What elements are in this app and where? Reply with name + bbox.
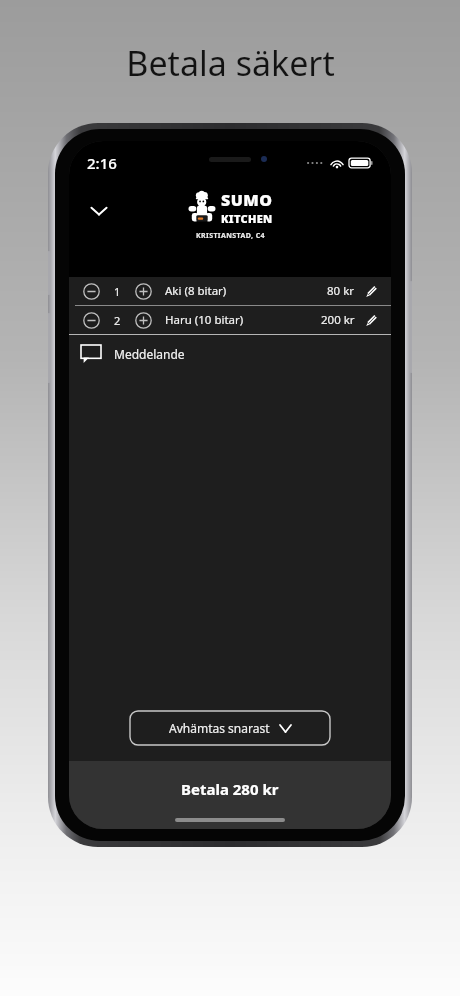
staticText: KITCHEN <box>221 211 273 226</box>
staticText: 2 <box>114 313 121 328</box>
staticText: 1 <box>114 284 121 299</box>
staticText: 80 kr <box>327 283 355 299</box>
button[interactable]: Avhämtas snarast <box>130 711 330 745</box>
button[interactable]: Increase <box>133 281 153 301</box>
staticText: SUMO <box>221 189 273 211</box>
button[interactable]: Decrease <box>81 310 101 330</box>
button[interactable]: Meddelande <box>69 335 391 373</box>
staticText: KRISTIANSTAD, C4 <box>196 231 265 241</box>
staticText: Haru (10 bitar) <box>165 312 244 328</box>
staticText: 2:16 <box>87 153 117 173</box>
staticText: Betala säkert <box>126 40 335 86</box>
staticText: 200 kr <box>321 312 355 328</box>
button[interactable]: Increase <box>133 310 153 330</box>
button[interactable]: Betala 280 kr <box>69 761 391 829</box>
button[interactable]: Decrease <box>69 277 391 305</box>
button[interactable]: Edit <box>363 312 379 328</box>
staticText: Meddelande <box>114 346 185 362</box>
staticText: Avhämtas snarast <box>169 720 270 736</box>
button[interactable]: Close <box>79 191 119 231</box>
staticText: Betala 280 kr <box>181 779 279 799</box>
button[interactable]: Edit <box>363 283 379 299</box>
button[interactable]: Decrease <box>81 281 101 301</box>
staticText: Aki (8 bitar) <box>165 283 227 299</box>
button[interactable]: Decrease <box>69 306 391 334</box>
